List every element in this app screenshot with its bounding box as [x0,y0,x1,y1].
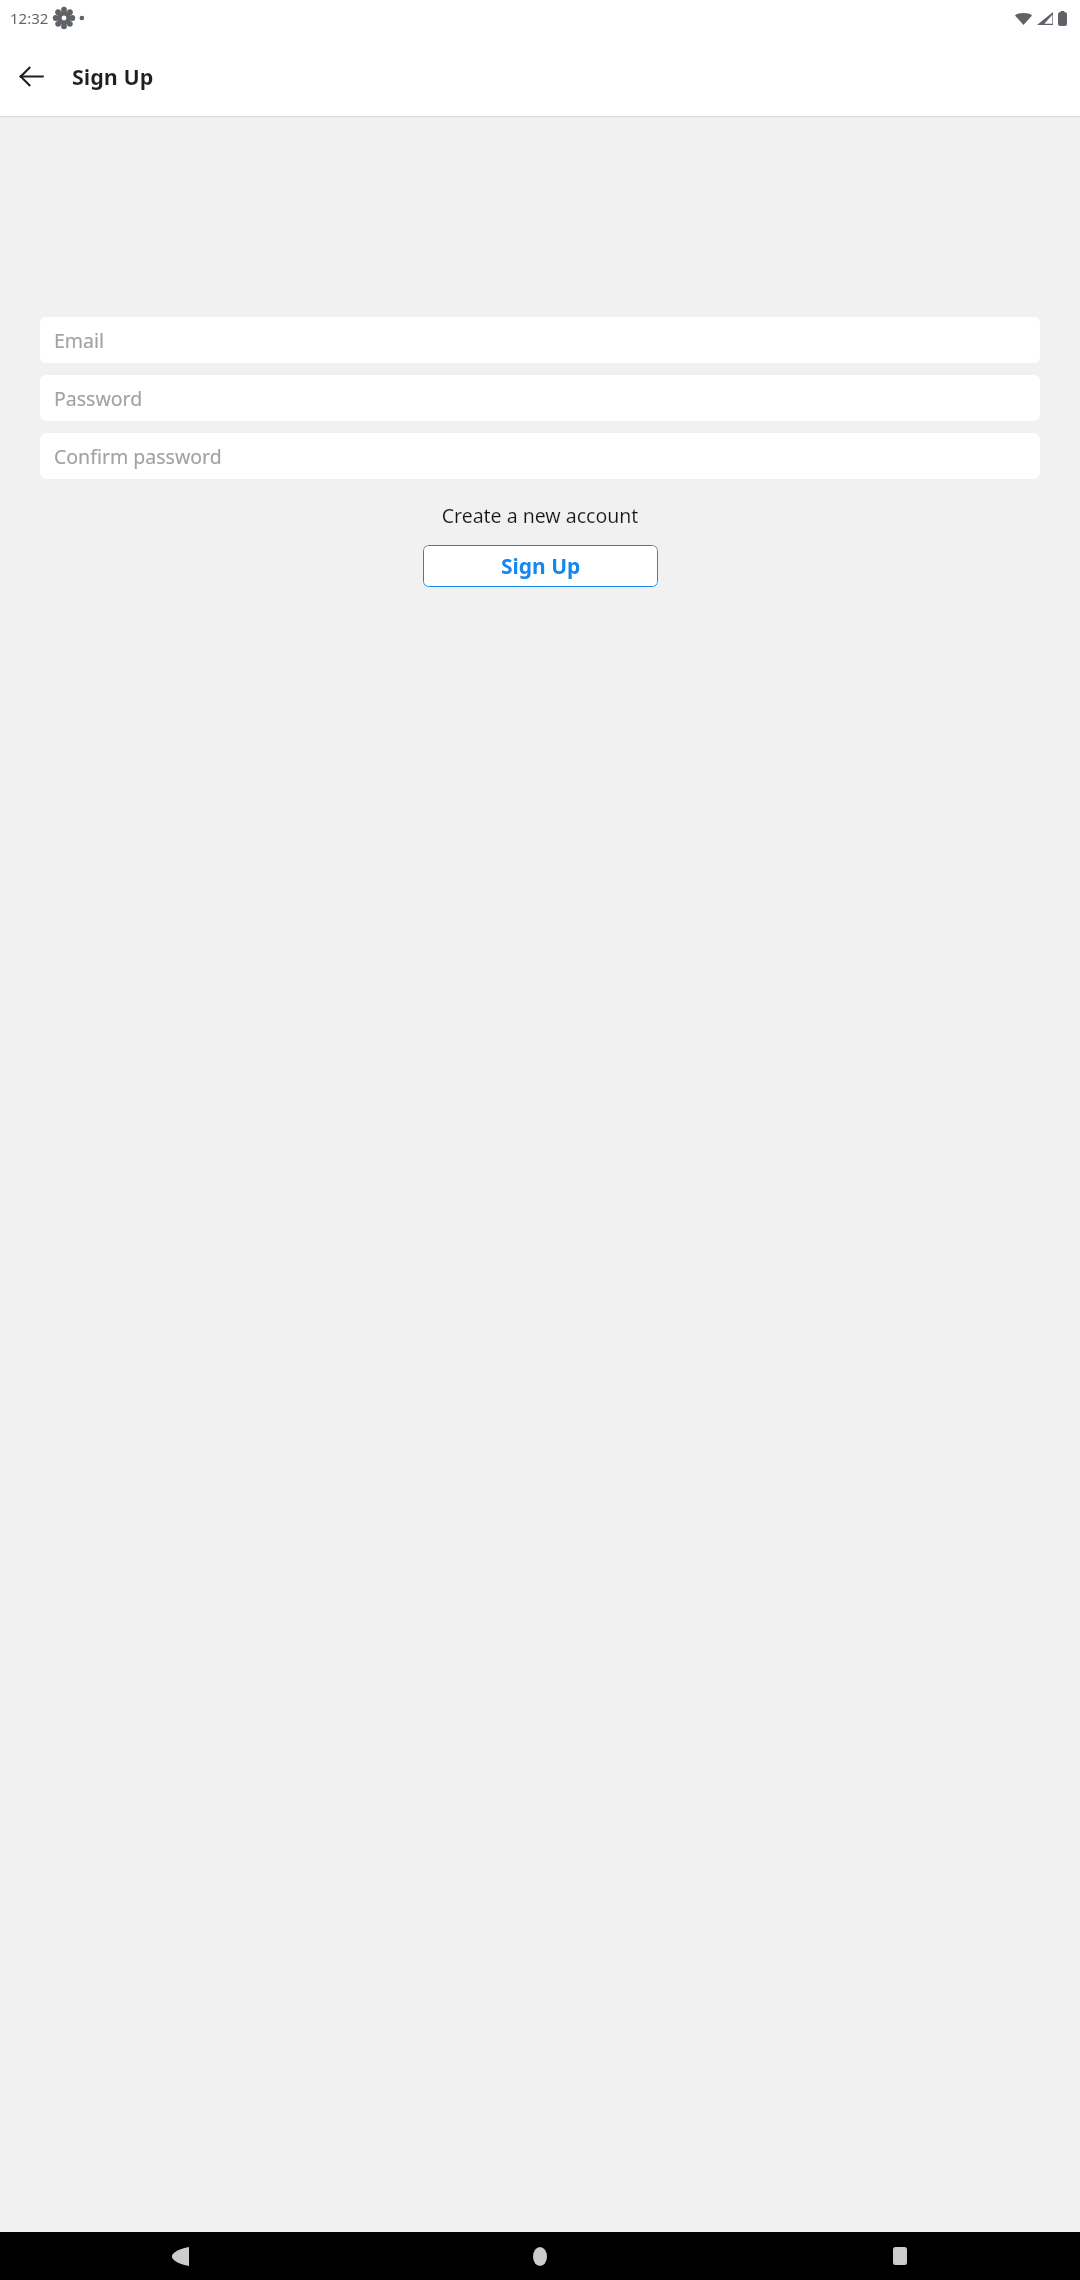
button[interactable]: Password [40,375,1040,421]
button[interactable]: Home [360,2232,720,2280]
staticText: Email [54,327,105,354]
button[interactable]: Sign Up [423,545,658,587]
staticText: Password [54,385,143,412]
staticText: Sign Up [501,552,581,581]
button[interactable]: Email [40,317,1040,363]
staticText: Create a new account [0,502,1080,529]
staticText: Sign Up [72,62,154,91]
button[interactable]: Confirm password [40,433,1040,479]
staticText: 12:32 [10,8,49,28]
button[interactable]: Back [0,2232,360,2280]
button[interactable]: Back [7,52,55,100]
button[interactable]: Recent apps [720,2232,1080,2280]
staticText: Confirm password [54,443,222,470]
